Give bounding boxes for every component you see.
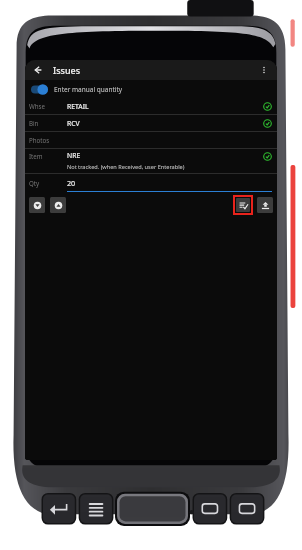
staticText: Issues: [53, 64, 81, 76]
other: Valid: [263, 119, 272, 128]
button[interactable]: Photos: [25, 132, 277, 149]
staticText: RCV: [67, 119, 80, 128]
button[interactable]: Upload: [257, 197, 273, 213]
staticText: Qty: [29, 179, 40, 187]
other: Valid: [263, 152, 272, 161]
staticText: Whse: [29, 102, 46, 110]
staticText: Bin: [29, 119, 39, 127]
button[interactable]: Qty: [25, 174, 277, 192]
staticText: Not tracked. (when Received, user Entera…: [67, 163, 185, 171]
button[interactable]: Review list: [236, 198, 250, 212]
staticText: Enter manual quantity: [54, 85, 123, 94]
staticText: Photos: [29, 136, 50, 144]
button[interactable]: Back: [29, 61, 47, 79]
button[interactable]: Enter manual quantity: [25, 80, 277, 98]
staticText: RETAIL: [67, 102, 89, 111]
staticText: Item: [29, 152, 43, 160]
staticText: 20: [67, 178, 76, 188]
button[interactable]: Item: [25, 149, 277, 174]
button[interactable]: Capture: [50, 197, 66, 213]
staticText: NRE: [67, 151, 81, 160]
button[interactable]: Bin: [25, 115, 277, 132]
other: Valid: [263, 102, 272, 111]
button[interactable]: Add photo: [29, 197, 45, 213]
button[interactable]: Whse: [25, 98, 277, 115]
button[interactable]: More options: [255, 61, 273, 79]
